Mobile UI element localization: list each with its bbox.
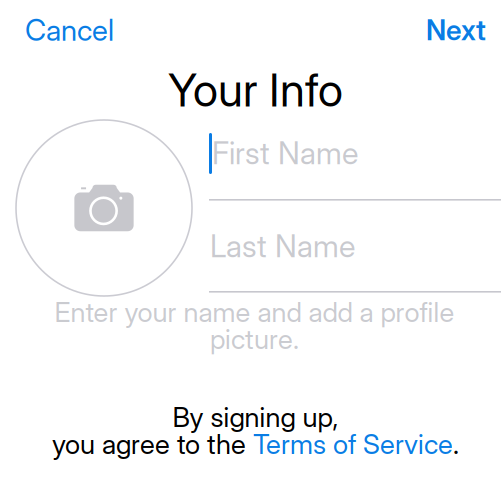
staticText: Last Name — [210, 227, 355, 264]
staticText: picture. — [210, 322, 299, 356]
staticText: Your Info — [168, 63, 343, 117]
staticText: Enter your name and add a profile — [54, 295, 454, 329]
button[interactable]: Terms of Service — [253, 427, 453, 461]
button[interactable]: Cancel — [25, 8, 135, 52]
button[interactable]: Add a profile photo — [16, 120, 192, 296]
staticText: Cancel — [25, 12, 114, 48]
button[interactable]: Next — [414, 8, 486, 52]
staticText: . — [453, 427, 459, 461]
button[interactable]: First Name — [212, 131, 497, 175]
staticText: First Name — [212, 134, 358, 171]
button[interactable]: Last Name — [210, 224, 495, 268]
staticText: Terms of Service — [253, 427, 453, 461]
staticText: Next — [426, 13, 486, 47]
staticText: you agree to the — [52, 427, 253, 461]
staticText: By signing up, — [172, 400, 338, 434]
